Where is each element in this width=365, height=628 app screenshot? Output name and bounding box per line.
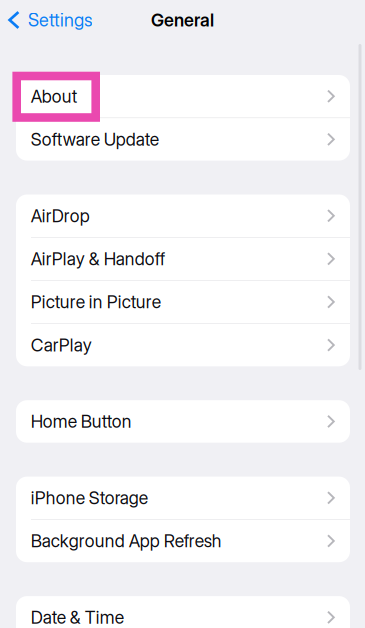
button[interactable]: Date & Time [16,596,350,628]
button[interactable]: iPhone Storage [16,477,350,519]
button[interactable]: About [16,75,350,117]
staticText: AirDrop [31,205,90,226]
staticText: Picture in Picture [31,291,161,313]
staticText: Settings [28,9,93,31]
button[interactable]: Software Update [16,118,350,161]
staticText: About [31,86,77,107]
staticText: Home Button [31,411,132,432]
staticText: Background App Refresh [31,530,222,552]
button[interactable]: Settings [0,0,93,42]
staticText: General [151,9,214,31]
staticText: AirPlay & Handoff [31,248,165,269]
button[interactable]: CarPlay [16,324,350,366]
staticText: Software Update [31,129,159,150]
button[interactable]: Home Button [16,400,350,443]
button[interactable]: Background App Refresh [16,520,350,562]
button[interactable]: Picture in Picture [16,281,350,323]
staticText: Date & Time [31,607,124,628]
button[interactable]: AirDrop [16,194,350,237]
staticText: iPhone Storage [31,487,148,508]
staticText: CarPlay [31,334,92,356]
button[interactable]: AirPlay & Handoff [16,238,350,280]
